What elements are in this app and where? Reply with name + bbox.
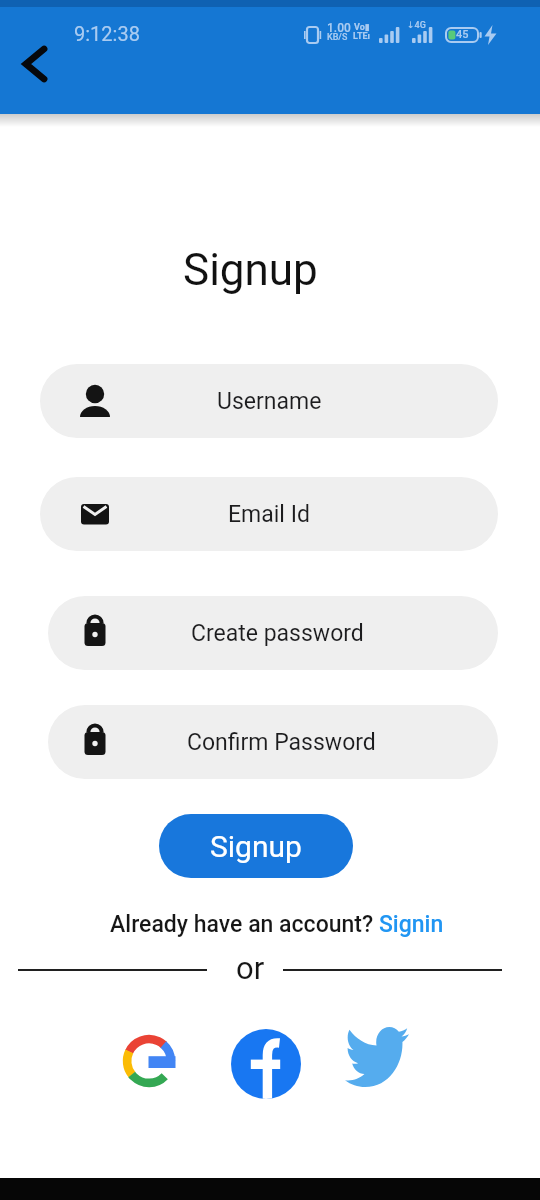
staticText: Signup xyxy=(210,829,302,864)
button[interactable]: Confirm Password xyxy=(48,705,498,779)
button[interactable] xyxy=(14,40,58,88)
staticText: or xyxy=(236,950,265,986)
button[interactable]: Signup xyxy=(159,814,353,878)
staticText: 1.00 xyxy=(327,21,351,35)
staticText: Create password xyxy=(191,620,364,647)
staticText: Signup xyxy=(183,244,318,296)
staticText: Already have an account? Signin xyxy=(110,911,444,938)
staticText: ↓4G xyxy=(407,20,426,31)
staticText: Username xyxy=(217,388,322,415)
button[interactable]: Create password xyxy=(48,596,498,670)
button[interactable] xyxy=(121,1033,177,1089)
staticText: KB/S xyxy=(327,32,348,43)
staticText: Confirm Password xyxy=(187,729,376,756)
button[interactable] xyxy=(231,1029,301,1099)
button[interactable]: Username xyxy=(40,364,498,438)
staticText: Vo▮ xyxy=(354,22,370,33)
staticText: Email Id xyxy=(228,501,310,528)
staticText: LTEı xyxy=(353,31,371,42)
staticText: 45 xyxy=(456,28,469,41)
button[interactable]: Already have an account? Signin xyxy=(0,911,540,938)
button[interactable] xyxy=(345,1027,409,1087)
staticText: 9:12:38 xyxy=(74,22,140,45)
button[interactable]: Email Id xyxy=(40,477,498,551)
